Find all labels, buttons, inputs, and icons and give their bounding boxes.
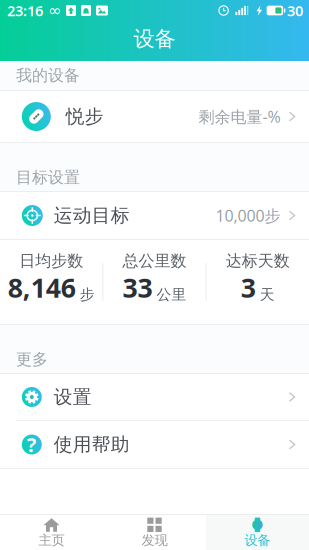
button[interactable]: 发现 (103, 515, 206, 550)
staticText: 发现 (141, 532, 167, 548)
staticText: 日均步数 (19, 251, 83, 271)
staticText: 目标设置 (16, 168, 80, 187)
staticText: 3 (241, 270, 256, 305)
staticText: 主页 (38, 532, 64, 548)
staticText: 公里 (156, 286, 186, 304)
staticText: ∞ (48, 1, 61, 20)
staticText: 30 (287, 1, 303, 20)
staticText: 设备 (133, 26, 175, 52)
staticText: 天 (260, 286, 275, 304)
button[interactable]: 设备 (206, 515, 309, 550)
staticText: 设置 (54, 385, 92, 408)
staticText: 我的设备 (16, 66, 80, 85)
staticText: 悦步 (66, 105, 104, 128)
staticText: 总公里数 (122, 251, 186, 271)
staticText: 8,146 (8, 270, 76, 305)
staticText: ? (27, 431, 37, 458)
button[interactable]: 悦步 (0, 91, 309, 142)
staticText: 运动目标 (54, 204, 130, 227)
button[interactable]: 运动目标 (0, 192, 309, 239)
staticText: 达标天数 (226, 251, 290, 271)
button[interactable]: 设置 (0, 374, 309, 420)
staticText: 使用帮助 (54, 433, 130, 456)
staticText: 更多 (16, 350, 48, 369)
staticText: 设备 (244, 532, 270, 548)
staticText: 33 (122, 270, 152, 305)
button[interactable]: 主页 (0, 515, 103, 550)
button[interactable]: ? (0, 421, 309, 468)
staticText: 23:16 (7, 1, 43, 20)
staticText: 剩余电量-% (198, 106, 280, 127)
staticText: 步 (80, 286, 95, 304)
staticText: 10,000步 (215, 205, 280, 226)
